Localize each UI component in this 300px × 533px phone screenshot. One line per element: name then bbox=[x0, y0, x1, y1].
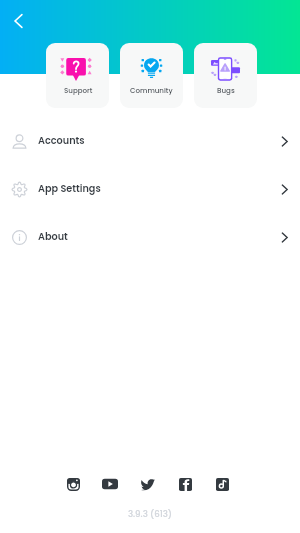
button[interactable]: YouTube bbox=[100, 474, 120, 494]
staticText: App Settings bbox=[38, 182, 101, 196]
button[interactable]: TikTok bbox=[212, 474, 232, 494]
staticText: Bugs bbox=[217, 86, 235, 96]
button[interactable]: Community bbox=[120, 43, 183, 108]
button[interactable]: Bugs bbox=[194, 43, 257, 108]
button[interactable]: Back bbox=[3, 6, 33, 36]
button[interactable]: Support bbox=[46, 43, 109, 108]
staticText: 3.9.3 (613) bbox=[0, 508, 300, 520]
button[interactable]: Accounts bbox=[0, 117, 300, 165]
staticText: About bbox=[38, 230, 68, 244]
button[interactable]: Instagram bbox=[63, 474, 83, 494]
button[interactable]: Twitter bbox=[138, 474, 158, 494]
button[interactable]: App Settings bbox=[0, 165, 300, 213]
button[interactable]: Facebook bbox=[175, 474, 195, 494]
staticText: Accounts bbox=[38, 134, 85, 148]
staticText: Community bbox=[130, 86, 173, 96]
button[interactable]: About bbox=[0, 213, 300, 261]
staticText: Support bbox=[64, 86, 93, 96]
